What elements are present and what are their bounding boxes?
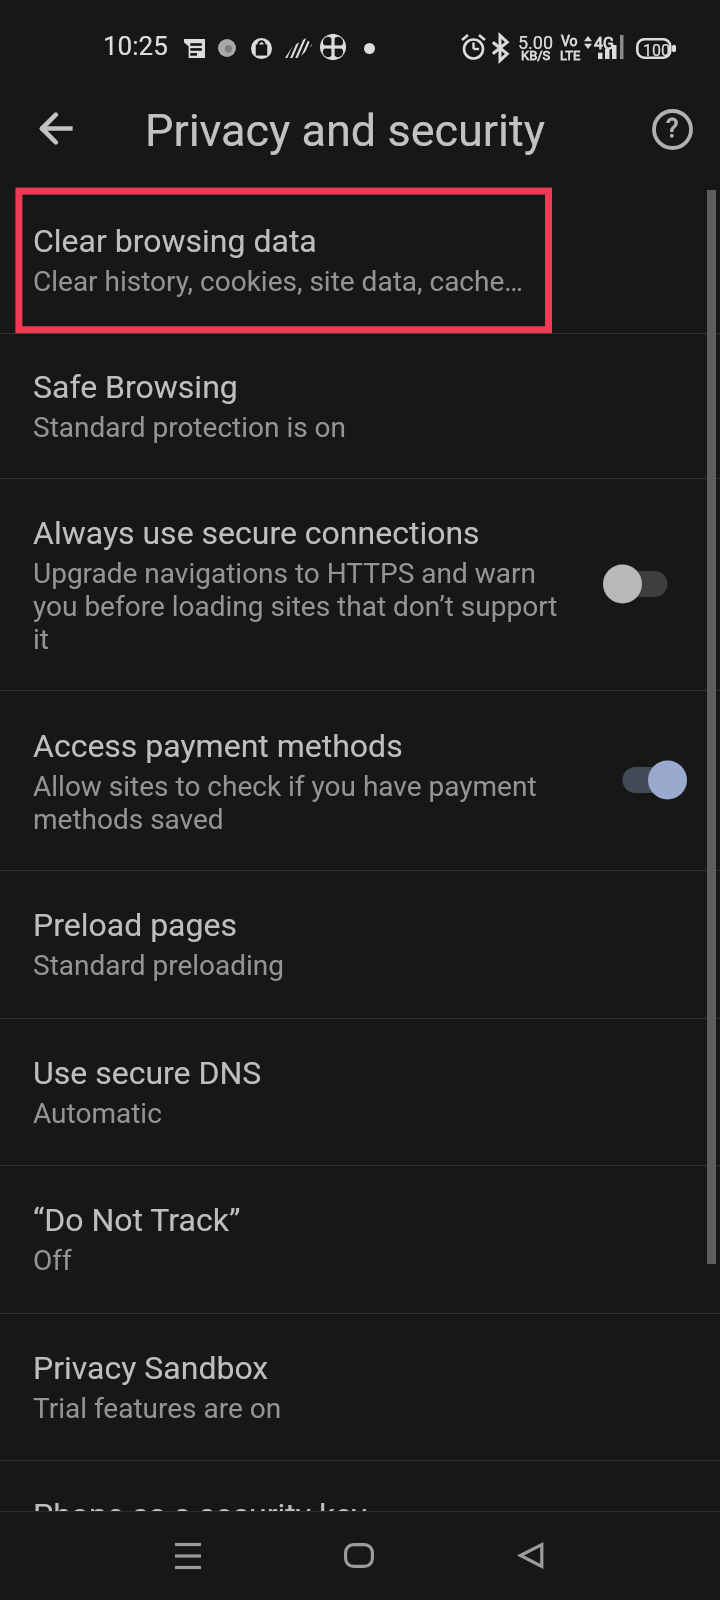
staticText: Clear browsing data <box>33 222 317 260</box>
button[interactable]: Switch on <box>603 758 687 802</box>
staticText: LTE <box>560 48 581 63</box>
button[interactable]: Access payment methods <box>0 690 720 870</box>
staticText: Use secure DNS <box>33 1054 262 1092</box>
staticText: ? <box>666 113 679 143</box>
staticText: Clear history, cookies, site data, cache… <box>33 265 524 298</box>
staticText: 4G <box>594 34 614 53</box>
button[interactable]: Help and feedback <box>644 101 700 157</box>
staticText: Off <box>33 1244 72 1277</box>
staticText: 5.00 <box>518 32 554 53</box>
staticText: Trial features are on <box>33 1392 282 1425</box>
staticText: Allow sites to check if you have payment… <box>33 770 563 836</box>
staticText: 10:25 <box>103 31 168 61</box>
button[interactable]: “Do Not Track” <box>0 1165 720 1313</box>
staticText: Privacy Sandbox <box>33 1349 269 1387</box>
staticText: Automatic <box>33 1097 162 1130</box>
staticText: Upgrade navigations to HTTPS and warn yo… <box>33 557 563 656</box>
staticText: Privacy and security <box>145 104 546 157</box>
staticText: Standard preloading <box>33 949 285 982</box>
staticText: Phone as a security key <box>33 1496 367 1534</box>
button[interactable]: Use secure DNS <box>0 1018 720 1165</box>
button[interactable]: Switch off <box>603 562 687 606</box>
staticText: Use your phone to sign in <box>33 1539 347 1572</box>
button[interactable]: Clear browsing data <box>0 186 720 333</box>
button[interactable]: Always use secure connections <box>0 478 720 690</box>
staticText: Always use secure connections <box>33 514 480 552</box>
staticText: “Do Not Track” <box>33 1201 241 1239</box>
button[interactable]: Preload pages <box>0 870 720 1018</box>
staticText: Safe Browsing <box>33 368 238 406</box>
staticText: 100 <box>643 41 670 60</box>
staticText: Access payment methods <box>33 727 403 765</box>
button[interactable]: Phone as a security key <box>0 1460 720 1600</box>
staticText: Preload pages <box>33 906 237 944</box>
button[interactable]: Privacy Sandbox <box>0 1313 720 1460</box>
button[interactable]: Navigate up <box>28 100 84 156</box>
button[interactable]: Back <box>496 1520 566 1590</box>
staticText: KB/S <box>521 48 551 63</box>
staticText: Vo <box>561 33 578 49</box>
button[interactable]: Recent apps <box>153 1520 223 1590</box>
button[interactable]: Safe Browsing <box>0 333 720 478</box>
staticText: Standard protection is on <box>33 411 347 444</box>
button[interactable]: Home <box>324 1520 394 1590</box>
